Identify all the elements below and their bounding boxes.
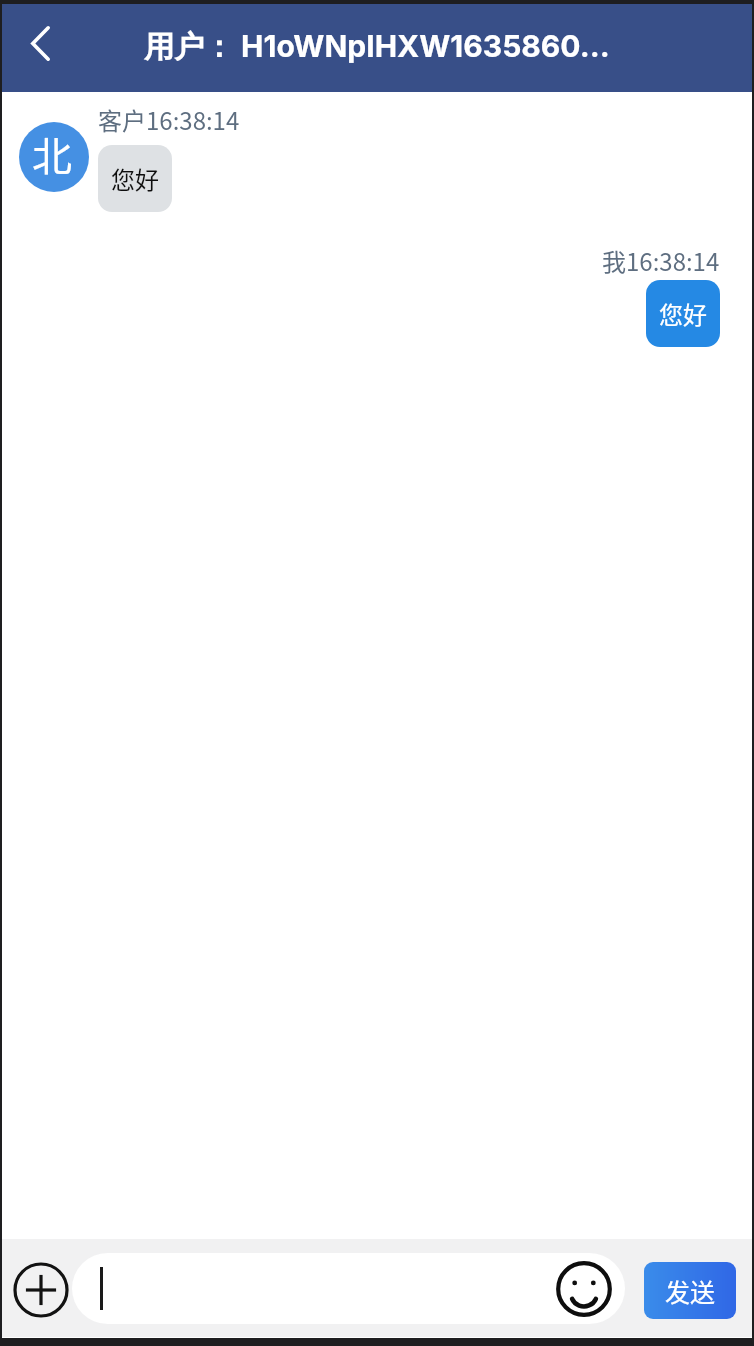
button[interactable]: Emoji	[72, 1253, 625, 1324]
button[interactable]: 发送	[644, 1262, 736, 1319]
staticText: 您好	[111, 161, 159, 196]
staticText: 用户： H1oWNpIHXW1635860...	[144, 28, 610, 66]
staticText: 北	[32, 125, 72, 183]
button[interactable]: Back	[2, 4, 78, 92]
button[interactable]: Avatar	[19, 122, 89, 192]
staticText: 客户16:38:14	[98, 102, 240, 137]
button[interactable]: Emoji	[554, 1259, 614, 1319]
button[interactable]: Add	[12, 1261, 70, 1319]
staticText: 您好	[659, 296, 707, 331]
staticText: 发送	[665, 1273, 716, 1309]
staticText: 我16:38:14	[602, 243, 720, 278]
button[interactable]: 您好	[98, 145, 172, 212]
button[interactable]: 您好	[646, 280, 720, 347]
